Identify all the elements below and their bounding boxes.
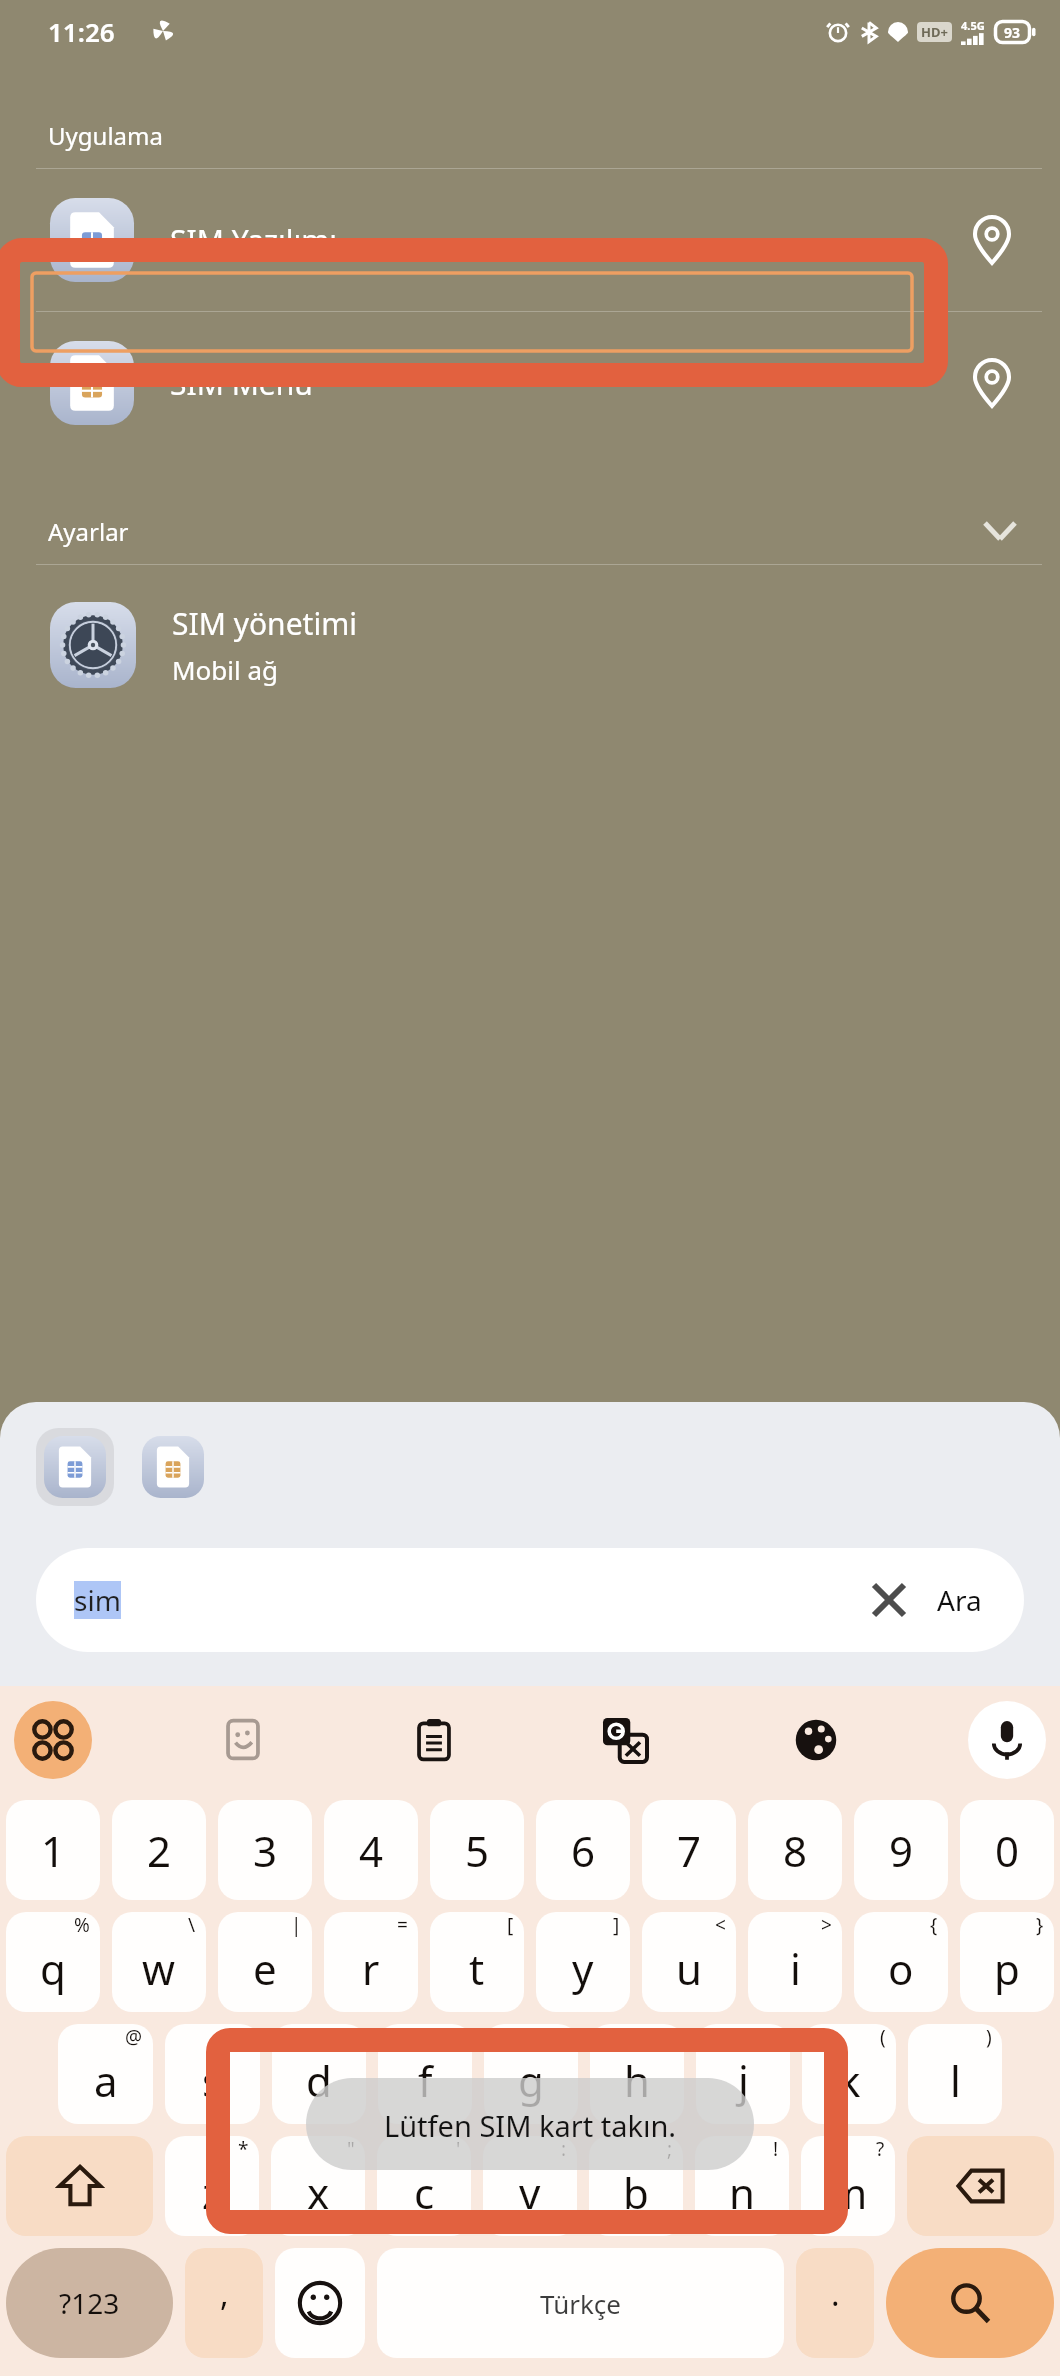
button[interactable]: SIM yönetimi: [0, 565, 1060, 725]
button[interactable]: :: [483, 2136, 577, 2236]
staticText: |: [291, 1912, 302, 1938]
staticText: 4: [359, 1822, 384, 1879]
button[interactable]: 1: [6, 1800, 100, 1900]
button[interactable]: Temizle: [857, 1568, 921, 1632]
staticText: ;: [667, 2136, 673, 2162]
button[interactable]: 2: [112, 1800, 206, 1900]
staticText: ]: [613, 1912, 620, 1938]
button[interactable]: Pano: [395, 1701, 473, 1779]
button[interactable]: 5: [430, 1800, 524, 1900]
staticText: .: [831, 2272, 840, 2316]
button[interactable]: Emoji: [275, 2248, 365, 2358]
staticText: s: [202, 2052, 223, 2109]
button[interactable]: Ayarlar bölümünü genişlet: [970, 501, 1030, 561]
staticText: [: [507, 1912, 514, 1938]
staticText: o: [888, 1940, 914, 1997]
staticText: 4.5G: [961, 18, 985, 33]
staticText: ": [347, 2136, 355, 2162]
button[interactable]: Konum: [962, 353, 1022, 413]
button[interactable]: Çıkartmalar: [204, 1701, 282, 1779]
button[interactable]: .: [796, 2248, 874, 2358]
button[interactable]: 8: [748, 1800, 842, 1900]
button[interactable]: _: [590, 2024, 684, 2124]
staticText: Mobil ağ: [172, 652, 279, 687]
button[interactable]: +: [696, 2024, 790, 2124]
staticText: 1: [41, 1822, 66, 1879]
staticText: 7: [677, 1822, 702, 1879]
button[interactable]: &: [484, 2024, 578, 2124]
button[interactable]: (: [802, 2024, 896, 2124]
button[interactable]: 6: [536, 1800, 630, 1900]
staticText: 8: [783, 1822, 808, 1879]
button[interactable]: ₺: [272, 2024, 366, 2124]
staticText: m: [828, 2164, 868, 2221]
button[interactable]: !: [695, 2136, 789, 2236]
button[interactable]: Tema: [777, 1701, 855, 1779]
button[interactable]: Ara: [886, 2248, 1054, 2358]
button[interactable]: %: [6, 1912, 100, 2012]
button[interactable]: ): [908, 2024, 1002, 2124]
button[interactable]: @: [58, 2024, 153, 2124]
staticText: Ayarlar: [48, 515, 129, 548]
staticText: ?123: [59, 2284, 120, 2322]
staticText: y: [572, 1940, 594, 1997]
button[interactable]: SIM Yazılımı: [0, 169, 1060, 311]
button[interactable]: 7: [642, 1800, 736, 1900]
staticText: ': [456, 2136, 461, 2162]
staticText: z: [202, 2164, 222, 2221]
button[interactable]: 4: [324, 1800, 418, 1900]
staticText: _: [665, 2024, 674, 2050]
button[interactable]: SIM Menu: [0, 312, 1060, 454]
button[interactable]: 3: [218, 1800, 312, 1900]
button[interactable]: SIM Menu: [134, 1428, 212, 1506]
button[interactable]: Uygulamalar: [14, 1701, 92, 1779]
button[interactable]: \: [112, 1912, 206, 2012]
staticText: l: [950, 2052, 961, 2109]
button[interactable]: -: [378, 2024, 472, 2124]
staticText: a: [94, 2052, 118, 2109]
button[interactable]: 0: [960, 1800, 1054, 1900]
button[interactable]: ;: [589, 2136, 683, 2236]
staticText: r: [362, 1940, 380, 1997]
button[interactable]: }: [960, 1912, 1054, 2012]
button[interactable]: 9: [854, 1800, 948, 1900]
button[interactable]: Shift: [6, 2136, 153, 2236]
staticText: !: [773, 2136, 779, 2162]
button[interactable]: {: [854, 1912, 948, 2012]
button[interactable]: #: [165, 2024, 260, 2124]
staticText: Ara: [937, 1581, 982, 1619]
staticText: <: [715, 1912, 726, 1938]
button[interactable]: SIM Yazılımı: [36, 1428, 114, 1506]
button[interactable]: [: [430, 1912, 524, 2012]
staticText: j: [738, 2052, 749, 2109]
staticText: ,: [220, 2272, 229, 2316]
button[interactable]: |: [218, 1912, 312, 2012]
staticText: 3: [253, 1822, 278, 1879]
button[interactable]: <: [642, 1912, 736, 2012]
button[interactable]: Çeviri: [586, 1701, 664, 1779]
button[interactable]: ': [377, 2136, 471, 2236]
button[interactable]: Geri sil: [907, 2136, 1054, 2236]
button[interactable]: >: [748, 1912, 842, 2012]
button[interactable]: ?: [801, 2136, 895, 2236]
button[interactable]: sim: [36, 1548, 1024, 1652]
staticText: 5: [465, 1822, 490, 1879]
staticText: {: [930, 1912, 938, 1938]
button[interactable]: =: [324, 1912, 418, 2012]
button[interactable]: Ara: [937, 1581, 982, 1619]
button[interactable]: Sesle yazma: [968, 1701, 1046, 1779]
button[interactable]: Konum: [962, 210, 1022, 270]
staticText: *: [238, 2136, 249, 2162]
staticText: >: [821, 1912, 832, 1938]
button[interactable]: ]: [536, 1912, 630, 2012]
button[interactable]: ,: [185, 2248, 263, 2358]
staticText: k: [838, 2052, 861, 2109]
button[interactable]: Türkçe: [377, 2248, 784, 2358]
button[interactable]: *: [165, 2136, 259, 2236]
staticText: @: [125, 2024, 143, 2050]
button[interactable]: ?123: [6, 2248, 173, 2358]
button[interactable]: ": [271, 2136, 365, 2236]
staticText: v: [519, 2164, 541, 2221]
staticText: i: [790, 1940, 801, 1997]
staticText: t: [469, 1940, 485, 1997]
